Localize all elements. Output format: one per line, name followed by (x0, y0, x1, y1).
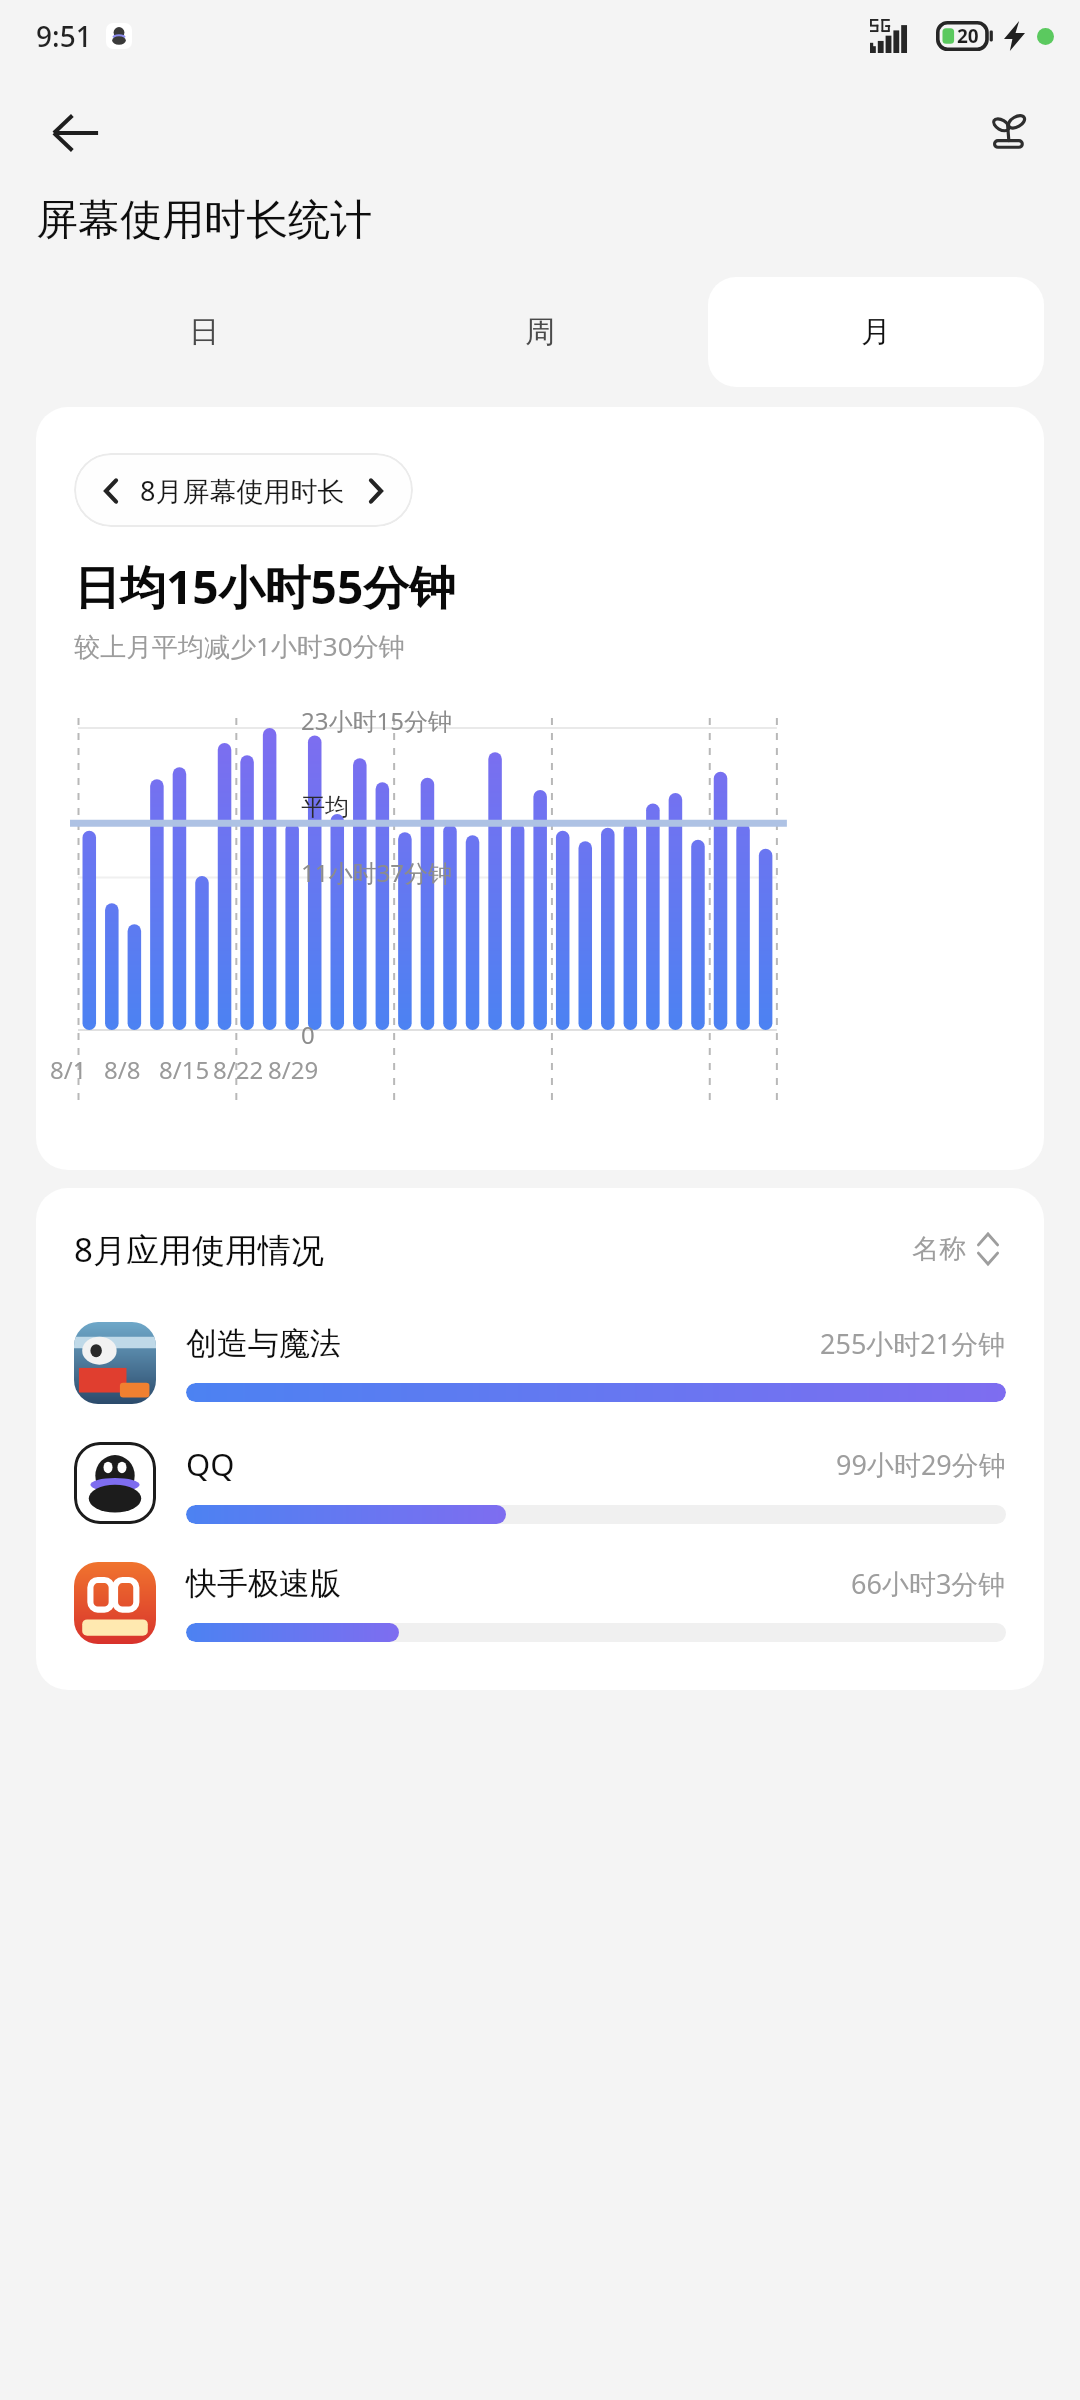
staticText: 255小时21分钟 (820, 1325, 1006, 1362)
button[interactable]: 月 (708, 277, 1044, 387)
staticText: 8/15 (159, 1053, 210, 1086)
staticText: 屏幕使用时长统计 (36, 194, 372, 247)
button[interactable]: 创造与魔法 (36, 1316, 1044, 1410)
staticText: 创造与魔法 (186, 1324, 341, 1363)
staticText: 11小时37分钟 (301, 856, 452, 889)
staticText: 日均15小时55分钟 (74, 555, 456, 618)
staticText: 0 (301, 1018, 315, 1051)
button[interactable]: Back (40, 97, 112, 169)
button[interactable]: 快手极速版 (36, 1556, 1044, 1650)
button[interactable]: 周 (372, 277, 708, 387)
button[interactable]: 日 (36, 277, 372, 387)
button[interactable]: 8月屏幕使用时长 (74, 453, 413, 527)
staticText: 快手极速版 (186, 1564, 341, 1603)
staticText: QQ (186, 1443, 235, 1485)
staticText: 8月应用使用情况 (74, 1227, 324, 1272)
button[interactable]: Focus mode (974, 99, 1042, 167)
staticText: 9:51 (36, 17, 92, 55)
staticText: 名称 (912, 1232, 966, 1266)
staticText: 8/22 (213, 1053, 264, 1086)
staticText: 日 (189, 313, 219, 351)
button[interactable]: QQ (36, 1436, 1044, 1530)
staticText: 8/8 (104, 1053, 141, 1086)
staticText: 月 (861, 313, 891, 351)
staticText: 平均 (301, 792, 349, 822)
staticText: 8/1 (50, 1053, 87, 1086)
staticText: 99小时29分钟 (836, 1446, 1006, 1483)
staticText: 66小时3分钟 (851, 1565, 1006, 1602)
staticText: 8/29 (268, 1053, 319, 1086)
staticText: 8月屏幕使用时长 (140, 472, 345, 509)
button[interactable]: 名称 (906, 1226, 1006, 1272)
staticText: 23小时15分钟 (301, 704, 452, 737)
staticText: 较上月平均减少1小时30分钟 (74, 628, 405, 664)
staticText: 20 (957, 23, 979, 49)
staticText: 周 (525, 313, 555, 351)
